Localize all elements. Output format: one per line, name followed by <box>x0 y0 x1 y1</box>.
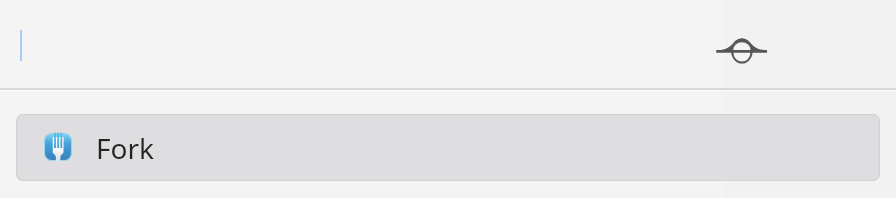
button[interactable]: Search engine <box>708 18 776 86</box>
button[interactable]: Fork <box>16 114 880 181</box>
button[interactable] <box>0 0 896 88</box>
staticText: Fork <box>96 129 154 167</box>
